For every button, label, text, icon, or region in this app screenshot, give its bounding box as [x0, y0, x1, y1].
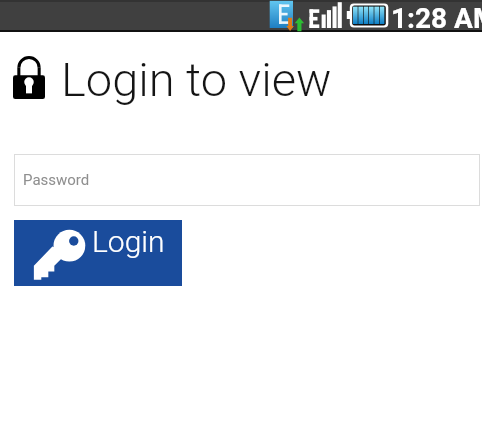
button[interactable]: Password	[14, 154, 480, 206]
staticText: Login to view	[61, 52, 332, 107]
button[interactable]: Login	[14, 220, 182, 286]
staticText: 1:28 AM	[391, 2, 482, 34]
other: Locked	[13, 56, 45, 99]
staticText: Password	[23, 171, 90, 189]
staticText: Login	[92, 224, 165, 259]
